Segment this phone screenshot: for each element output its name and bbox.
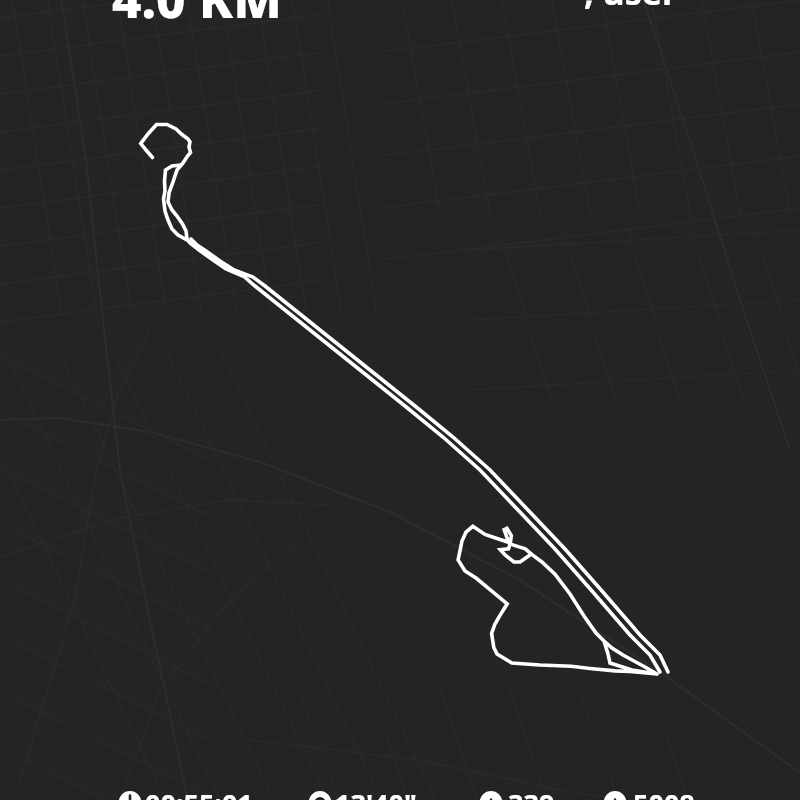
staticText: 00:55:01 [145,785,253,800]
staticText: 13'40" [335,785,417,800]
staticText: , user [584,0,678,15]
button[interactable]: 4.0 KM [112,0,282,32]
button[interactable]: Average pace [308,785,417,800]
button[interactable]: Calories [479,785,555,800]
staticText: 5008 [633,785,695,800]
button[interactable]: Steps [603,785,695,800]
button[interactable]: , user [584,0,678,15]
button[interactable]: Moving time [118,785,253,800]
button[interactable]: Activity route map [0,0,800,800]
staticText: 4.0 KM [112,0,282,32]
staticText: 339 [508,785,555,800]
